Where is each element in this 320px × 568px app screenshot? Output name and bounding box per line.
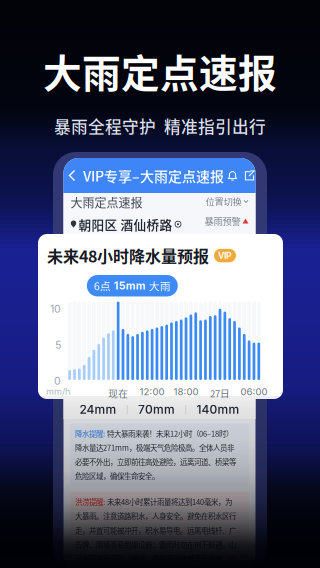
staticText: 大雨定点速报	[70, 194, 142, 211]
staticText: 必要不外出，立即前往高处避险，远离河道、桥梁等	[75, 456, 236, 467]
staticText: 27日	[210, 386, 230, 400]
staticText: 15mm	[114, 279, 146, 292]
staticText: 暴雨预警	[204, 214, 240, 228]
button[interactable]: 返回	[61, 162, 83, 188]
staticText: 24mm	[79, 402, 116, 417]
staticText: 6点	[94, 278, 111, 293]
staticText: 现在	[108, 386, 128, 400]
staticText: mm/h	[46, 386, 70, 397]
staticText: 区出行避开河道、隧道，遇暴雨迅速撤离至高地。如	[75, 553, 236, 564]
button[interactable]: 位置切换	[205, 195, 248, 208]
staticText: VIP专享–大雨定点速报	[83, 165, 224, 186]
staticText: 0	[54, 374, 61, 387]
staticText: 大暴雨。注意道路积水，人身安全。避免在积水区行	[75, 511, 236, 521]
button[interactable]: 分享	[241, 164, 258, 186]
staticText: 危险区域，确保生命安全。	[75, 471, 159, 481]
staticText: 暴雨全程守护 精准指引出行	[54, 114, 266, 138]
staticText: 告牌、围墙等易倒塌设施；雷雨时勿在树下躲避。山	[75, 539, 236, 550]
staticText: 走，并置可能被冲开，积水易导电。远离电线杆、广	[75, 525, 236, 536]
staticText: 大雨定点速报	[43, 43, 277, 99]
staticText: 大雨	[149, 278, 171, 293]
staticText: 140mm	[196, 402, 239, 417]
staticText: 降水量达271mm，极端天气危险极高。全体人员非	[75, 442, 234, 453]
staticText: 位置切换	[205, 195, 241, 208]
staticText: 70mm	[138, 402, 175, 417]
staticText: 10	[50, 302, 61, 315]
staticText: 朝阳区 酒仙桥路	[78, 215, 172, 233]
staticText: 12:00	[140, 386, 165, 398]
staticText: 降水提醒:	[75, 428, 105, 439]
staticText: 5	[55, 338, 61, 351]
staticText: 06:00	[240, 386, 267, 398]
staticText: 未来48小时累计雨量将达到140毫米，为	[105, 496, 232, 507]
staticText: 洪涝提醒:	[75, 496, 105, 507]
staticText: VIP	[218, 250, 232, 261]
button[interactable]: 通知	[224, 164, 241, 186]
staticText: 未来48小时降水量预报	[47, 244, 209, 267]
staticText: 特大暴雨来袭！未来12小时（06–18时）	[105, 428, 233, 439]
staticText: 18:00	[173, 386, 198, 398]
